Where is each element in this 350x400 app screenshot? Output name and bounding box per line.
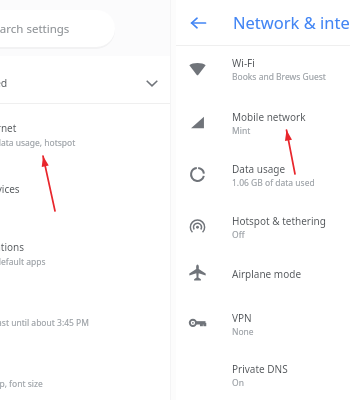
- button[interactable]: Connected devices: [0, 182, 175, 212]
- staticText: Mobile network: [232, 110, 306, 124]
- staticText: Data usage: [232, 162, 286, 176]
- button[interactable]: Mobile network: [175, 98, 350, 149]
- staticText: Private DNS: [232, 362, 288, 376]
- staticText: Off: [232, 229, 245, 241]
- button[interactable]: Suggested: [0, 62, 175, 102]
- staticText: 58% - Should last until about 3:45 PM: [0, 317, 89, 329]
- button[interactable]: Back: [185, 10, 211, 36]
- staticText: None: [232, 326, 254, 338]
- button[interactable]: Display: [0, 362, 175, 392]
- staticText: Network & internet: [0, 121, 17, 135]
- staticText: Hotspot & tethering: [232, 214, 326, 228]
- button[interactable]: VPN: [175, 299, 350, 350]
- staticText: Airplane mode: [232, 267, 302, 281]
- button[interactable]: Hotspot & tethering: [175, 202, 350, 253]
- button[interactable]: Battery: [0, 301, 175, 331]
- staticText: Suggested: [0, 76, 8, 90]
- button[interactable]: Private DNS: [175, 350, 350, 400]
- button[interactable]: Network & internet: [0, 121, 175, 151]
- staticText: Apps & notifications: [0, 240, 25, 254]
- button[interactable]: Data usage: [175, 150, 350, 201]
- staticText: Search settings: [0, 21, 70, 37]
- button[interactable]: Wi-Fi: [175, 44, 350, 95]
- button[interactable]: Apps & notifications: [0, 240, 175, 270]
- button[interactable]: Airplane mode: [175, 248, 350, 299]
- staticText: Wi-Fi: [232, 56, 255, 70]
- staticText: Mobile, Wi-Fi, data usage, hotspot: [0, 137, 76, 149]
- staticText: VPN: [232, 311, 252, 325]
- button[interactable]: Search settings: [0, 10, 115, 47]
- staticText: On: [232, 377, 244, 389]
- staticText: Network & internet: [233, 11, 350, 33]
- staticText: 1.06 GB of data used: [232, 177, 315, 189]
- staticText: Mint: [232, 125, 251, 137]
- staticText: Assistant, recent apps, default apps: [0, 256, 46, 268]
- staticText: Connected devices: [0, 182, 20, 196]
- staticText: Books and Brews Guest: [232, 71, 326, 83]
- staticText: Wallpaper, sleep, font size: [0, 378, 43, 390]
